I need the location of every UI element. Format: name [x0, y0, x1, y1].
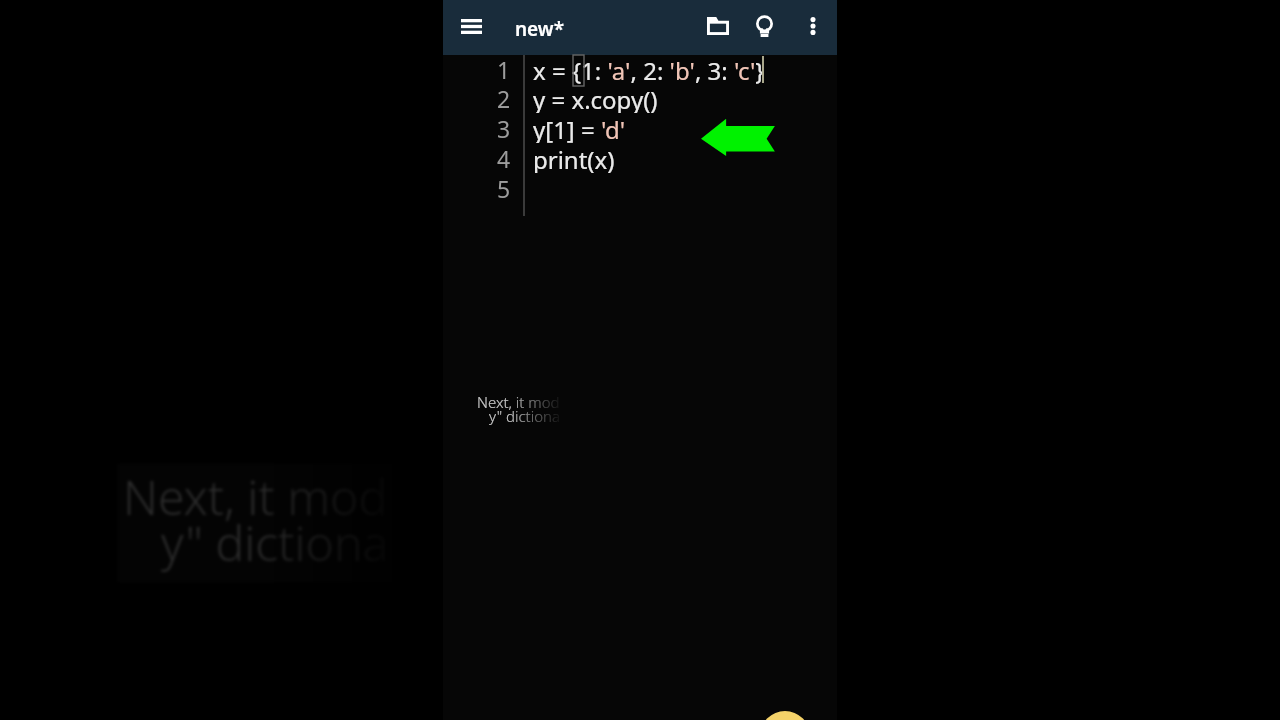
button[interactable]: Code editor	[443, 55, 837, 720]
staticText: Next, it mod	[477, 392, 560, 412]
staticText: y = x.copy()	[533, 83, 658, 113]
button[interactable]: Hints	[744, 6, 784, 46]
staticText: y" dictiona	[489, 406, 560, 426]
button[interactable]: new*	[512, 0, 562, 55]
staticText: 5	[497, 173, 511, 203]
button[interactable]: More options	[793, 6, 833, 46]
staticText: print(x)	[533, 143, 615, 173]
staticText: y[1] = 'd'	[533, 113, 626, 143]
staticText: x = {1: 'a', 2: 'b', 3: 'c'}	[533, 54, 765, 84]
staticText: 1	[497, 54, 511, 84]
other: Pointer arrow	[701, 118, 776, 156]
staticText: y" dictiona	[161, 510, 389, 575]
button[interactable]: Open file	[698, 6, 738, 46]
button[interactable]: Open navigation drawer	[451, 6, 491, 46]
staticText: 3	[497, 113, 511, 143]
staticText: 2	[497, 83, 511, 113]
staticText: Next, it mod	[123, 464, 388, 529]
staticText: new*	[515, 16, 565, 42]
staticText: 4	[497, 143, 511, 173]
